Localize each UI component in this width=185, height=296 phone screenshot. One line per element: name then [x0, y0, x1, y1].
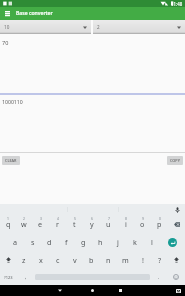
button[interactable]: c [49, 251, 66, 269]
button[interactable]: 1 [0, 215, 16, 233]
staticText: k [133, 237, 137, 247]
staticText: t [73, 219, 76, 229]
staticText: 5 [74, 216, 76, 221]
button[interactable]: Navigation menu [0, 7, 15, 20]
button[interactable]: k [126, 233, 143, 251]
button[interactable]: ?123 [0, 269, 17, 285]
staticText: 7 [108, 216, 110, 221]
button[interactable]: 8 [117, 215, 134, 233]
staticText: u [106, 219, 111, 229]
button[interactable]: Voice input [169, 204, 185, 215]
staticText: m [122, 255, 129, 265]
staticText: g [81, 237, 86, 247]
button[interactable]: 2 [93, 20, 185, 34]
staticText: ! [142, 255, 144, 265]
button[interactable]: n [100, 251, 117, 269]
staticText: j [117, 237, 119, 247]
staticText: , [25, 274, 27, 281]
button[interactable]: COPY [167, 156, 183, 165]
staticText: 70 [2, 39, 9, 46]
button[interactable]: Shift [0, 251, 16, 269]
staticText: s [31, 237, 35, 247]
button[interactable]: a [7, 233, 24, 251]
button[interactable]: b [83, 251, 100, 269]
staticText: n [106, 255, 111, 265]
staticText: r [56, 219, 59, 229]
button[interactable]: l [143, 233, 160, 251]
button[interactable]: ! [134, 251, 151, 269]
staticText: l [151, 237, 153, 247]
staticText: 9 [142, 216, 144, 221]
staticText: . [158, 274, 160, 281]
button[interactable]: x [32, 251, 49, 269]
staticText: CLEAR [5, 158, 17, 163]
button[interactable]: z [16, 251, 32, 269]
staticText: 3 [40, 216, 42, 221]
button[interactable]: 6 [83, 215, 100, 233]
button[interactable]: Enter [168, 238, 177, 247]
button[interactable]: 2 [16, 215, 32, 233]
staticText: c [56, 255, 60, 265]
button[interactable]: 0 [151, 215, 168, 233]
staticText: Base converter [16, 10, 53, 17]
button[interactable]: m [117, 251, 134, 269]
staticText: y [90, 219, 94, 229]
button[interactable]: Recents [109, 285, 131, 296]
button[interactable]: , [17, 269, 35, 285]
button[interactable]: Backspace [168, 215, 185, 233]
staticText: d [47, 237, 52, 247]
staticText: v [73, 255, 77, 265]
staticText: e [38, 219, 43, 229]
button[interactable]: 10 [0, 20, 91, 34]
button[interactable]: Emoji [167, 269, 185, 285]
staticText: 0 [159, 216, 161, 221]
button[interactable]: Switch keyboard [171, 285, 185, 296]
button[interactable]: Home [81, 285, 103, 296]
staticText: q [6, 219, 11, 229]
button[interactable]: d [41, 233, 58, 251]
button[interactable]: 4 [49, 215, 66, 233]
button[interactable]: f [58, 233, 75, 251]
other: Backspace [174, 222, 180, 227]
staticText: ?123 [4, 275, 13, 280]
staticText: 2 [97, 24, 100, 30]
staticText: 11:48 [171, 1, 183, 7]
button[interactable]: ? [151, 251, 168, 269]
staticText: 1 [7, 216, 9, 221]
button[interactable]: v [66, 251, 83, 269]
staticText: 8 [125, 216, 127, 221]
button[interactable]: j [109, 233, 126, 251]
button[interactable]: Shift [168, 251, 185, 269]
staticText: h [98, 237, 103, 247]
button[interactable]: 5 [66, 215, 83, 233]
button[interactable]: g [75, 233, 92, 251]
button[interactable]: 3 [32, 215, 49, 233]
staticText: ? [158, 255, 162, 265]
staticText: i [125, 219, 127, 229]
staticText: 6 [91, 216, 93, 221]
button[interactable]: 9 [134, 215, 151, 233]
staticText: o [140, 219, 145, 229]
button[interactable]: h [92, 233, 109, 251]
other: Shift [174, 257, 179, 263]
staticText: 1000110 [2, 98, 23, 105]
staticText: p [157, 219, 162, 229]
staticText: b [89, 255, 94, 265]
staticText: 10 [4, 24, 10, 30]
other: Shift [6, 257, 11, 263]
staticText: w [21, 219, 27, 229]
staticText: 4 [57, 216, 59, 221]
staticText: z [22, 255, 26, 265]
button[interactable]: s [24, 233, 41, 251]
staticText: COPY [170, 158, 180, 163]
staticText: x [39, 255, 43, 265]
staticText: 2 [23, 216, 25, 221]
button[interactable]: 7 [100, 215, 117, 233]
button[interactable]: CLEAR [2, 156, 20, 165]
staticText: f [65, 237, 68, 247]
button[interactable]: Back [49, 285, 71, 296]
staticText: a [13, 237, 18, 247]
